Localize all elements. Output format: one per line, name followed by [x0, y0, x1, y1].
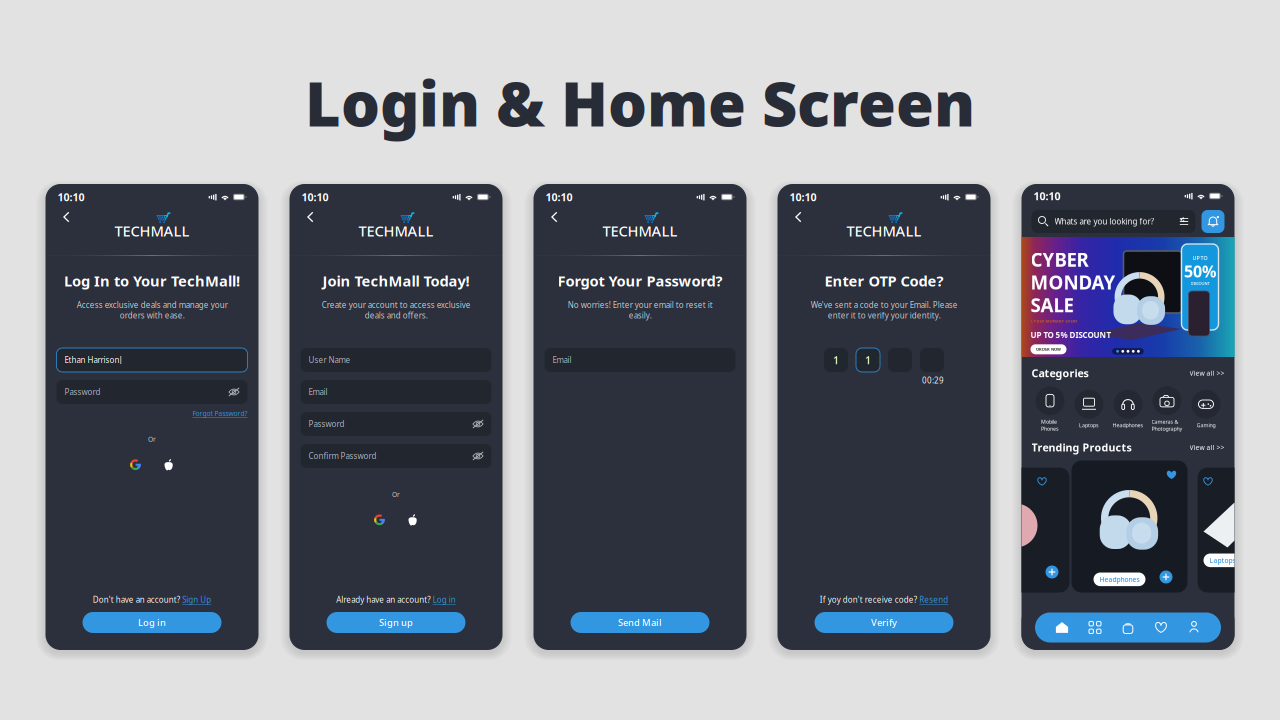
staticText: Password: [64, 387, 100, 397]
button[interactable]: Forgot Password?: [192, 409, 247, 418]
staticText: Enter OTP Code?: [824, 271, 943, 290]
button[interactable]: Notifications: [1201, 210, 1224, 233]
staticText: ORDER NOW: [1036, 347, 1061, 352]
staticText: Log In to Your TechMall!: [64, 271, 240, 290]
staticText: 50%: [1184, 261, 1216, 282]
staticText: TECHMALL: [846, 221, 921, 240]
button[interactable]: Back: [302, 209, 318, 225]
button[interactable]: Continue with Apple: [159, 456, 177, 474]
button[interactable]: Home: [1047, 616, 1077, 638]
staticText: 10:10: [1033, 189, 1060, 203]
staticText: Verify: [871, 616, 897, 629]
button[interactable]: Verify: [814, 612, 953, 633]
button[interactable]: Gaming: [1189, 390, 1223, 429]
staticText: Email: [552, 355, 571, 365]
staticText: Whats are you looking for?: [1054, 216, 1153, 227]
staticText: Don't have an account?: [93, 594, 180, 605]
staticText: Password: [308, 419, 344, 429]
button[interactable]: Profile: [1179, 616, 1209, 638]
staticText: TECHMALL: [114, 221, 189, 240]
button[interactable]: Wishlist: [1146, 616, 1176, 638]
staticText: 10:10: [57, 190, 84, 204]
button[interactable]: Cameras & Photography: [1150, 386, 1184, 432]
staticText: 10:10: [789, 190, 816, 204]
staticText: UP TO 5% DISCOUNT: [1030, 330, 1111, 340]
staticText: 1: [833, 353, 839, 367]
staticText: Forgot Your Password?: [557, 271, 722, 290]
button[interactable]: Back: [790, 209, 806, 225]
staticText: DISCOUNT: [1190, 281, 1209, 286]
staticText: Or: [392, 490, 400, 499]
button[interactable]: OTP digit: [856, 348, 880, 372]
button[interactable]: Continue with Google: [126, 456, 144, 474]
button[interactable]: Mobile Phones: [1033, 386, 1067, 432]
staticText: Resend: [919, 594, 948, 605]
staticText: Trending Products: [1031, 440, 1131, 454]
staticText: SALE: [1030, 293, 1073, 317]
button[interactable]: Whats are you looking for?: [1031, 210, 1195, 233]
staticText: Or: [148, 435, 156, 444]
staticText: Gaming: [1196, 422, 1215, 429]
staticText: Sign up: [379, 616, 413, 629]
staticText: Mobile Phones: [1041, 418, 1059, 432]
staticText: Headphones: [1112, 422, 1143, 429]
staticText: 00:29: [922, 375, 944, 386]
staticText: TECHMALL: [358, 221, 433, 240]
button[interactable]: Laptops: [1072, 390, 1106, 429]
button[interactable]: View all >>: [1189, 369, 1224, 378]
staticText: Log in: [138, 616, 166, 629]
button[interactable]: Resend: [919, 594, 948, 605]
staticText: 10:10: [545, 190, 572, 204]
staticText: Login & Home Screen: [305, 62, 975, 143]
button[interactable]: Continue with Apple: [403, 511, 421, 529]
staticText: Ethan Harrison: [64, 355, 119, 365]
staticText: User Name: [308, 355, 350, 365]
staticText: UP TO: [1192, 254, 1207, 262]
button[interactable]: Headphones: [1071, 460, 1187, 592]
staticText: Laptops: [1079, 422, 1099, 429]
staticText: Sign Up: [182, 594, 211, 605]
staticText: TECHMALL: [602, 221, 677, 240]
staticText: Log in: [433, 594, 456, 605]
staticText: MONDAY: [1030, 270, 1115, 295]
staticText: Access exclusive deals and manage your o…: [76, 299, 227, 321]
staticText: Email: [308, 387, 327, 397]
staticText: Laptops: [1209, 556, 1235, 565]
button[interactable]: View all >>: [1189, 443, 1224, 452]
staticText: Cameras & Photography: [1151, 418, 1182, 432]
staticText: Headphones: [1099, 575, 1139, 584]
button[interactable]: OTP digit: [824, 348, 848, 372]
staticText: 10:10: [301, 190, 328, 204]
button[interactable]: ORDER NOW: [1030, 344, 1066, 354]
button[interactable]: Send Mail: [570, 612, 709, 633]
staticText: CYBER: [1030, 247, 1088, 272]
staticText: No worries! Enter your email to reset it…: [567, 299, 712, 321]
button[interactable]: Log in: [433, 594, 456, 605]
staticText: We've sent a code to your Email. Please …: [810, 299, 957, 321]
button[interactable]: Continue with Google: [370, 511, 388, 529]
staticText: Categories: [1031, 366, 1088, 380]
staticText: View all >>: [1189, 443, 1224, 452]
staticText: Create your account to access exclusive …: [321, 299, 470, 321]
button[interactable]: Laptops: [1197, 467, 1280, 592]
staticText: 1: [865, 353, 871, 367]
button[interactable]: Back: [58, 209, 74, 225]
staticText: CYBER MONDAY EVENT: [1030, 318, 1077, 324]
staticText: Confirm Password: [308, 451, 376, 461]
staticText: Already have an account?: [336, 594, 430, 605]
button[interactable]: Cart: [1113, 616, 1143, 638]
button[interactable]: Headphones: [1111, 390, 1145, 429]
button[interactable]: [985, 467, 1069, 592]
staticText: Send Mail: [618, 616, 662, 629]
button[interactable]: Log in: [82, 612, 221, 633]
staticText: Forgot Password?: [192, 409, 247, 418]
button[interactable]: Categories: [1080, 616, 1110, 638]
staticText: View all >>: [1189, 369, 1224, 378]
button[interactable]: Back: [546, 209, 562, 225]
staticText: If yoy don't receive code?: [820, 594, 917, 605]
button[interactable]: Sign Up: [182, 594, 211, 605]
staticText: Join TechMall Today!: [322, 271, 469, 290]
button[interactable]: Sign up: [326, 612, 465, 633]
